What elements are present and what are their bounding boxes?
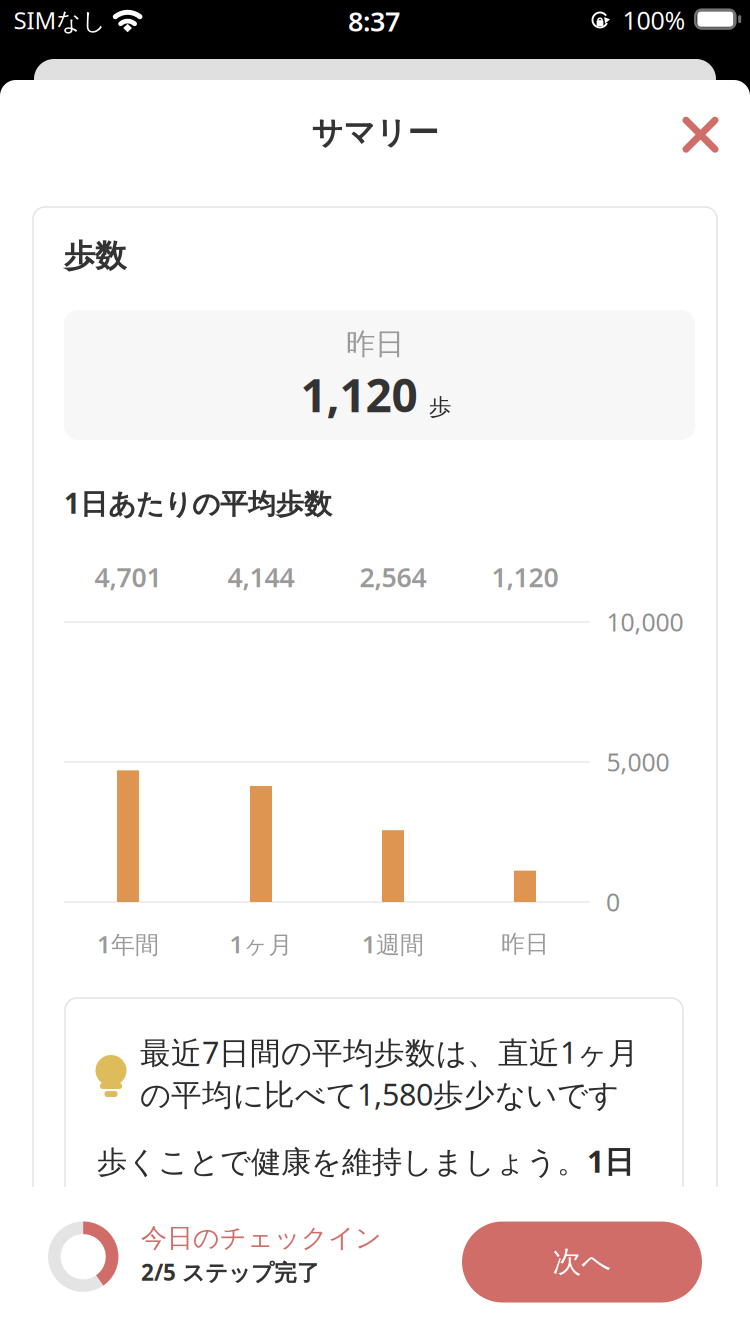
staticText: 1,120 xyxy=(300,363,417,426)
staticText: 昨日 xyxy=(346,325,404,362)
staticText: 1日あたりの平均歩数 xyxy=(64,484,332,522)
staticText: 次へ xyxy=(552,1244,611,1280)
staticText: 1,120 xyxy=(491,559,558,595)
staticText: の平均に比べて1,580歩少ないです xyxy=(140,1073,619,1115)
staticText: 1ヶ月 xyxy=(229,928,292,960)
staticText: 10,000 xyxy=(606,605,683,639)
staticText: 1年間 xyxy=(97,928,159,960)
staticText: 5,000 xyxy=(606,745,669,779)
staticText: サマリー xyxy=(311,113,438,153)
button[interactable]: 閉じる xyxy=(671,106,729,164)
staticText: 最近7日間の平均歩数は、直近1ヶ月 xyxy=(140,1031,639,1073)
staticText: 100% xyxy=(622,3,685,37)
staticText: 昨日 xyxy=(501,929,549,959)
staticText: 1週間 xyxy=(362,928,424,960)
staticText: 今日のチェックイン xyxy=(141,1222,382,1254)
button[interactable]: 次へ xyxy=(462,1221,702,1302)
staticText: 0 xyxy=(606,885,620,919)
staticText: 4,144 xyxy=(227,559,294,595)
staticText: 2,564 xyxy=(359,559,426,595)
staticText: 4,701 xyxy=(94,559,161,595)
staticText: 2/5 ステップ完了 xyxy=(141,1257,320,1287)
staticText: 歩数 xyxy=(64,236,126,276)
staticText: 歩 xyxy=(429,393,451,421)
staticText: 歩くことで健康を維持しましょう。1日 xyxy=(97,1141,634,1181)
staticText: SIMなし xyxy=(13,4,106,36)
staticText: 8:37 xyxy=(348,3,400,39)
